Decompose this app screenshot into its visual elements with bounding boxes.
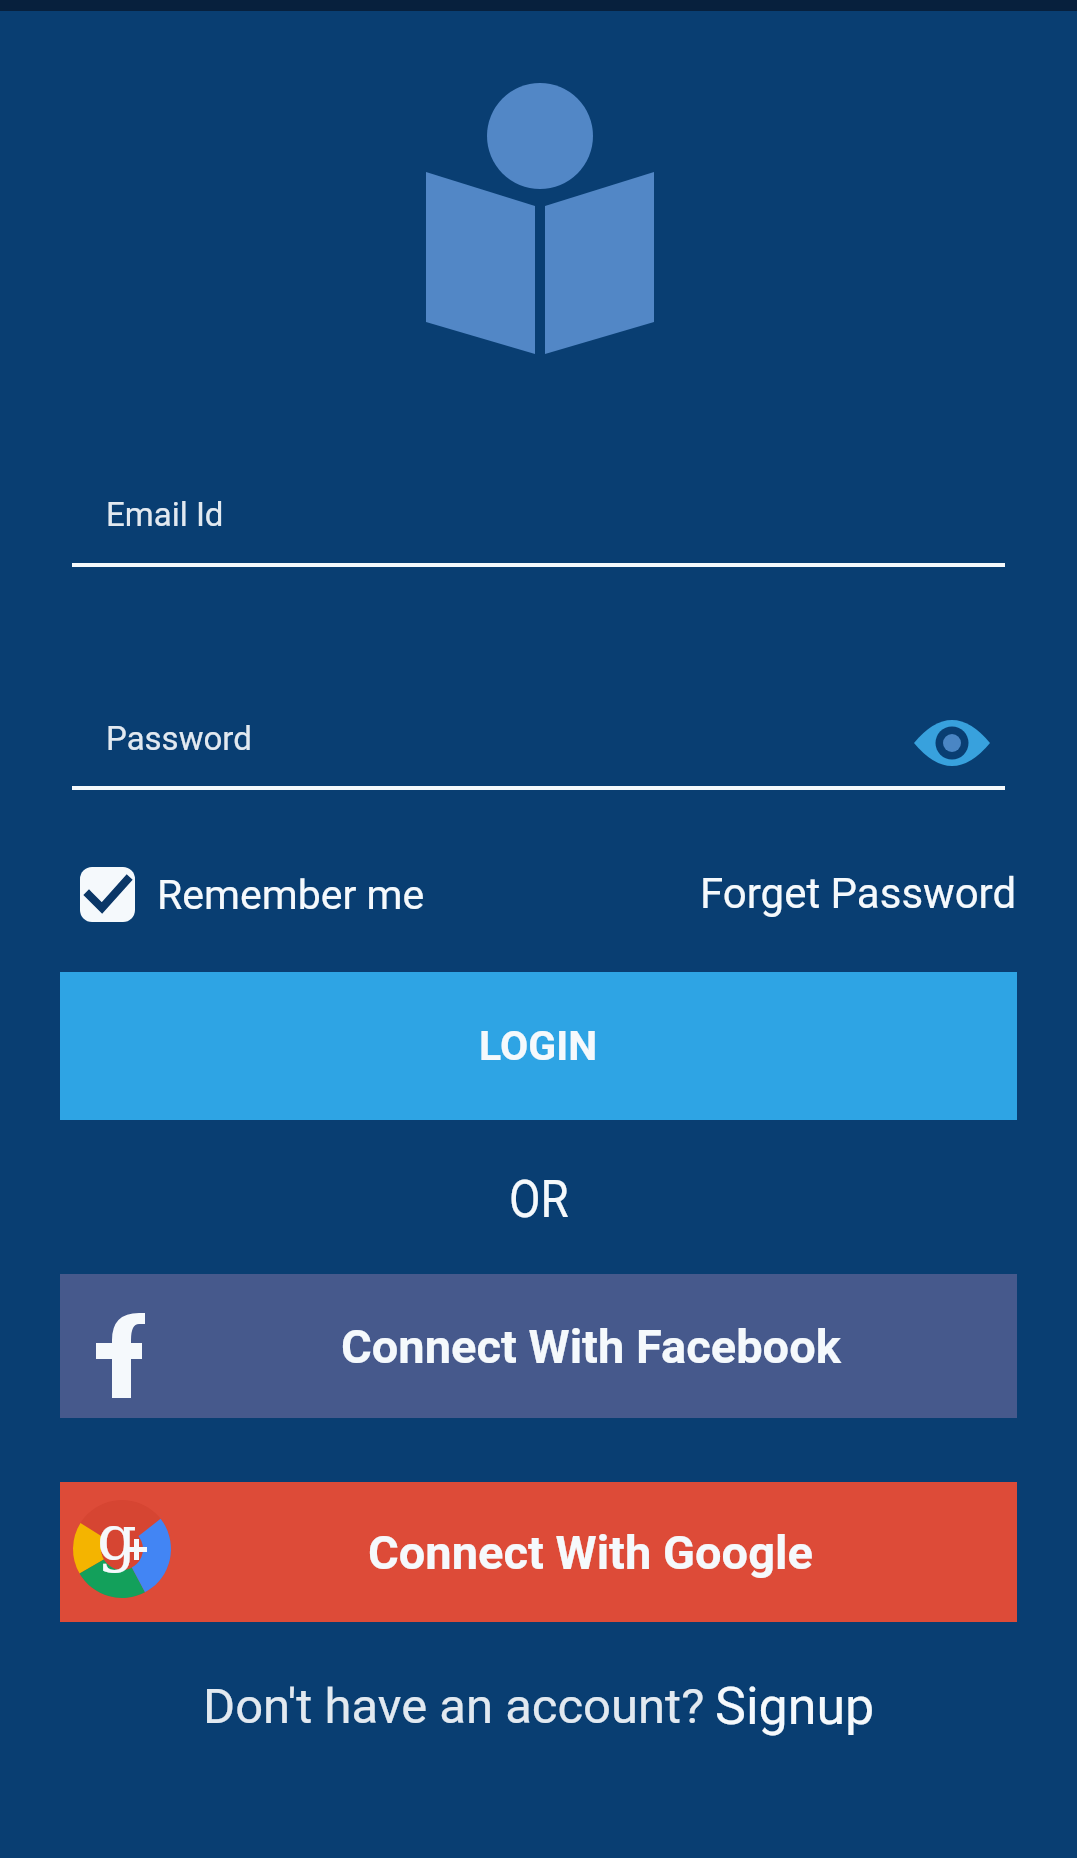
button[interactable]: Email Id — [72, 477, 1005, 567]
button[interactable]: g — [60, 1482, 1017, 1622]
button[interactable]: Password — [72, 699, 1005, 790]
staticText: OR — [509, 1169, 569, 1230]
button[interactable]: LOGIN — [60, 972, 1017, 1120]
staticText: LOGIN — [479, 1022, 598, 1070]
button[interactable]: Remember me — [80, 867, 425, 922]
button[interactable] — [914, 720, 990, 766]
staticText: Email Id — [106, 495, 224, 534]
staticText: Don't have an account? — [203, 1678, 705, 1735]
button[interactable]: Connect With Facebook — [60, 1274, 1017, 1418]
staticText: Connect With Google — [368, 1525, 813, 1580]
staticText: Password — [106, 719, 252, 758]
staticText: Remember me — [157, 871, 425, 919]
staticText: g — [97, 1501, 137, 1573]
button[interactable]: Signup — [715, 1676, 875, 1737]
button[interactable]: Forget Password — [700, 869, 1017, 918]
staticText: Connect With Facebook — [341, 1319, 841, 1374]
